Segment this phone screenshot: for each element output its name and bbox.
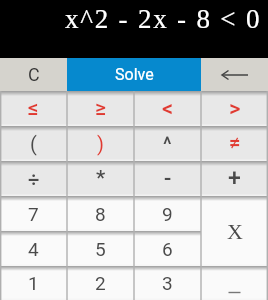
staticText: 7 (28, 203, 39, 225)
button[interactable]: ÷ (0, 161, 67, 196)
button[interactable]: + (201, 161, 268, 196)
staticText: ≤ (28, 96, 39, 121)
staticText: < (162, 96, 174, 122)
button[interactable]: ≤ (0, 91, 67, 126)
staticText: * (96, 166, 106, 191)
button[interactable] (201, 58, 268, 91)
button[interactable]: C (0, 58, 67, 91)
staticText: 2 (95, 272, 106, 294)
button[interactable]: 5 (67, 231, 134, 266)
staticText: ( (30, 132, 37, 155)
staticText: 9 (162, 203, 173, 225)
button[interactable]: ) (67, 126, 134, 161)
staticText: - (164, 166, 172, 192)
staticText: ≠ (229, 131, 241, 156)
staticText: ) (97, 132, 104, 155)
button[interactable]: - (134, 161, 201, 196)
button[interactable] (201, 266, 268, 300)
button[interactable]: ≠ (201, 126, 268, 161)
staticText: 4 (28, 238, 39, 260)
button[interactable]: 6 (134, 231, 201, 266)
button[interactable]: ^ (134, 126, 201, 161)
staticText: 1 (28, 272, 39, 294)
staticText: + (228, 165, 241, 192)
button[interactable]: < (134, 91, 201, 126)
button[interactable]: 9 (134, 196, 201, 231)
button[interactable]: 3 (134, 266, 201, 300)
staticText: ^ (163, 132, 172, 155)
button[interactable]: X (201, 196, 268, 266)
staticText: ÷ (28, 167, 40, 190)
staticText: 3 (162, 272, 173, 294)
button[interactable]: 1 (0, 266, 67, 300)
button[interactable]: * (67, 161, 134, 196)
staticText: X (227, 219, 243, 243)
button[interactable]: > (201, 91, 268, 126)
button[interactable]: 2 (67, 266, 134, 300)
button[interactable]: ( (0, 126, 67, 161)
staticText: Solve (115, 65, 154, 84)
button[interactable]: ≥ (67, 91, 134, 126)
button[interactable]: 8 (67, 196, 134, 231)
staticText: C (28, 64, 40, 85)
button[interactable]: 7 (0, 196, 67, 231)
staticText: 8 (95, 203, 106, 225)
button[interactable]: 4 (0, 231, 67, 266)
button[interactable]: Solve (67, 58, 201, 91)
staticText: 6 (162, 238, 173, 260)
staticText: ≥ (95, 96, 106, 121)
staticText: x^2 - 2x - 8 < 0 (65, 4, 262, 34)
staticText: 5 (95, 238, 106, 260)
staticText: > (229, 96, 241, 122)
